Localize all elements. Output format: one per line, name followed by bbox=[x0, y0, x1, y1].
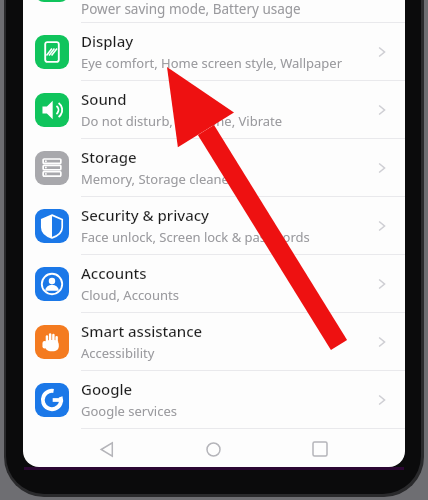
button[interactable]: Back bbox=[85, 431, 129, 467]
button[interactable]: Home bbox=[191, 431, 235, 467]
staticText: Google bbox=[81, 379, 133, 399]
staticText: Power saving mode, Battery usage bbox=[81, 0, 301, 18]
staticText: Face unlock, Screen lock & passwords bbox=[81, 228, 310, 246]
button[interactable]: Storage bbox=[23, 139, 405, 196]
staticText: Do not disturb, Ringtone, Vibrate bbox=[81, 112, 283, 130]
staticText: Eye comfort, Home screen style, Wallpape… bbox=[81, 54, 343, 72]
staticText: Google services bbox=[81, 402, 177, 420]
button[interactable]: Recent apps bbox=[298, 431, 342, 467]
staticText: Sound bbox=[81, 89, 127, 109]
button[interactable]: Display bbox=[23, 23, 405, 80]
button[interactable]: Smart assistance bbox=[23, 313, 405, 370]
button[interactable]: Google bbox=[23, 371, 405, 428]
staticText: Accessibility bbox=[81, 344, 155, 362]
button[interactable]: Security & privacy bbox=[23, 197, 405, 254]
staticText: Smart assistance bbox=[81, 321, 203, 341]
staticText: Cloud, Accounts bbox=[81, 286, 179, 304]
staticText: Memory, Storage cleaner bbox=[81, 170, 235, 188]
button[interactable]: Sound bbox=[23, 81, 405, 138]
staticText: Storage bbox=[81, 147, 137, 167]
staticText: Display bbox=[81, 31, 134, 51]
staticText: Accounts bbox=[81, 263, 147, 283]
button[interactable]: Accounts bbox=[23, 255, 405, 312]
staticText: Security & privacy bbox=[81, 205, 210, 225]
